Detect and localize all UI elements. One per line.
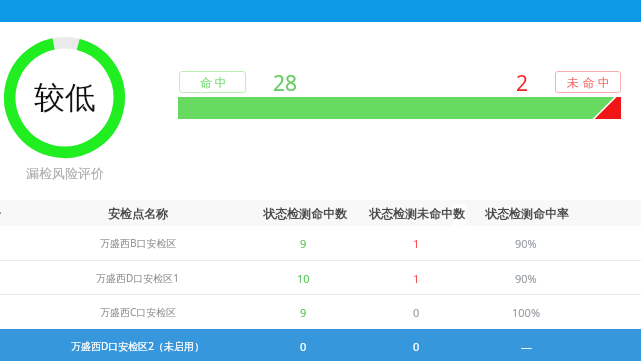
staticText: 状态检测命中数: [263, 206, 347, 221]
staticText: 安检点名称: [108, 206, 168, 221]
staticText: 1: [413, 236, 420, 251]
button[interactable]: 万盛西B口安检区: [0, 226, 641, 260]
button[interactable]: 万盛西D口安检区1: [0, 261, 641, 295]
staticText: 9: [300, 236, 307, 251]
staticText: 1: [413, 271, 420, 286]
staticText: 0: [300, 339, 307, 354]
staticText: 万盛西D口安检区1: [96, 271, 180, 285]
staticText: 状态检测未命中数: [369, 206, 465, 221]
staticText: 2: [516, 69, 529, 98]
staticText: 状态检测命中率: [485, 206, 569, 221]
button[interactable]: 命中率进度: [178, 97, 621, 119]
staticText: 90%: [515, 236, 537, 251]
button[interactable]: 万盛西C口安检区: [0, 295, 641, 329]
staticText: 万盛西D口安检区2（未启用）: [71, 339, 205, 353]
button[interactable]: 万盛西D口安检区2（未启用）: [0, 329, 641, 361]
staticText: —: [521, 339, 532, 354]
staticText: 10: [297, 271, 310, 286]
staticText: 漏检风险评价: [26, 165, 104, 181]
staticText: 较低: [34, 78, 96, 117]
staticText: 序号: [0, 206, 1, 221]
staticText: 28: [273, 69, 298, 98]
staticText: 命中: [200, 75, 230, 90]
button[interactable]: 未命中: [555, 71, 621, 93]
staticText: 100%: [512, 305, 541, 320]
staticText: 0: [413, 339, 420, 354]
staticText: 万盛西B口安检区: [100, 236, 177, 250]
staticText: 9: [300, 305, 307, 320]
button[interactable]: 命中: [179, 71, 246, 93]
staticText: 0: [413, 305, 420, 320]
staticText: 万盛西C口安检区: [100, 305, 177, 319]
staticText: 未命中: [567, 75, 614, 90]
staticText: 90%: [515, 271, 537, 286]
